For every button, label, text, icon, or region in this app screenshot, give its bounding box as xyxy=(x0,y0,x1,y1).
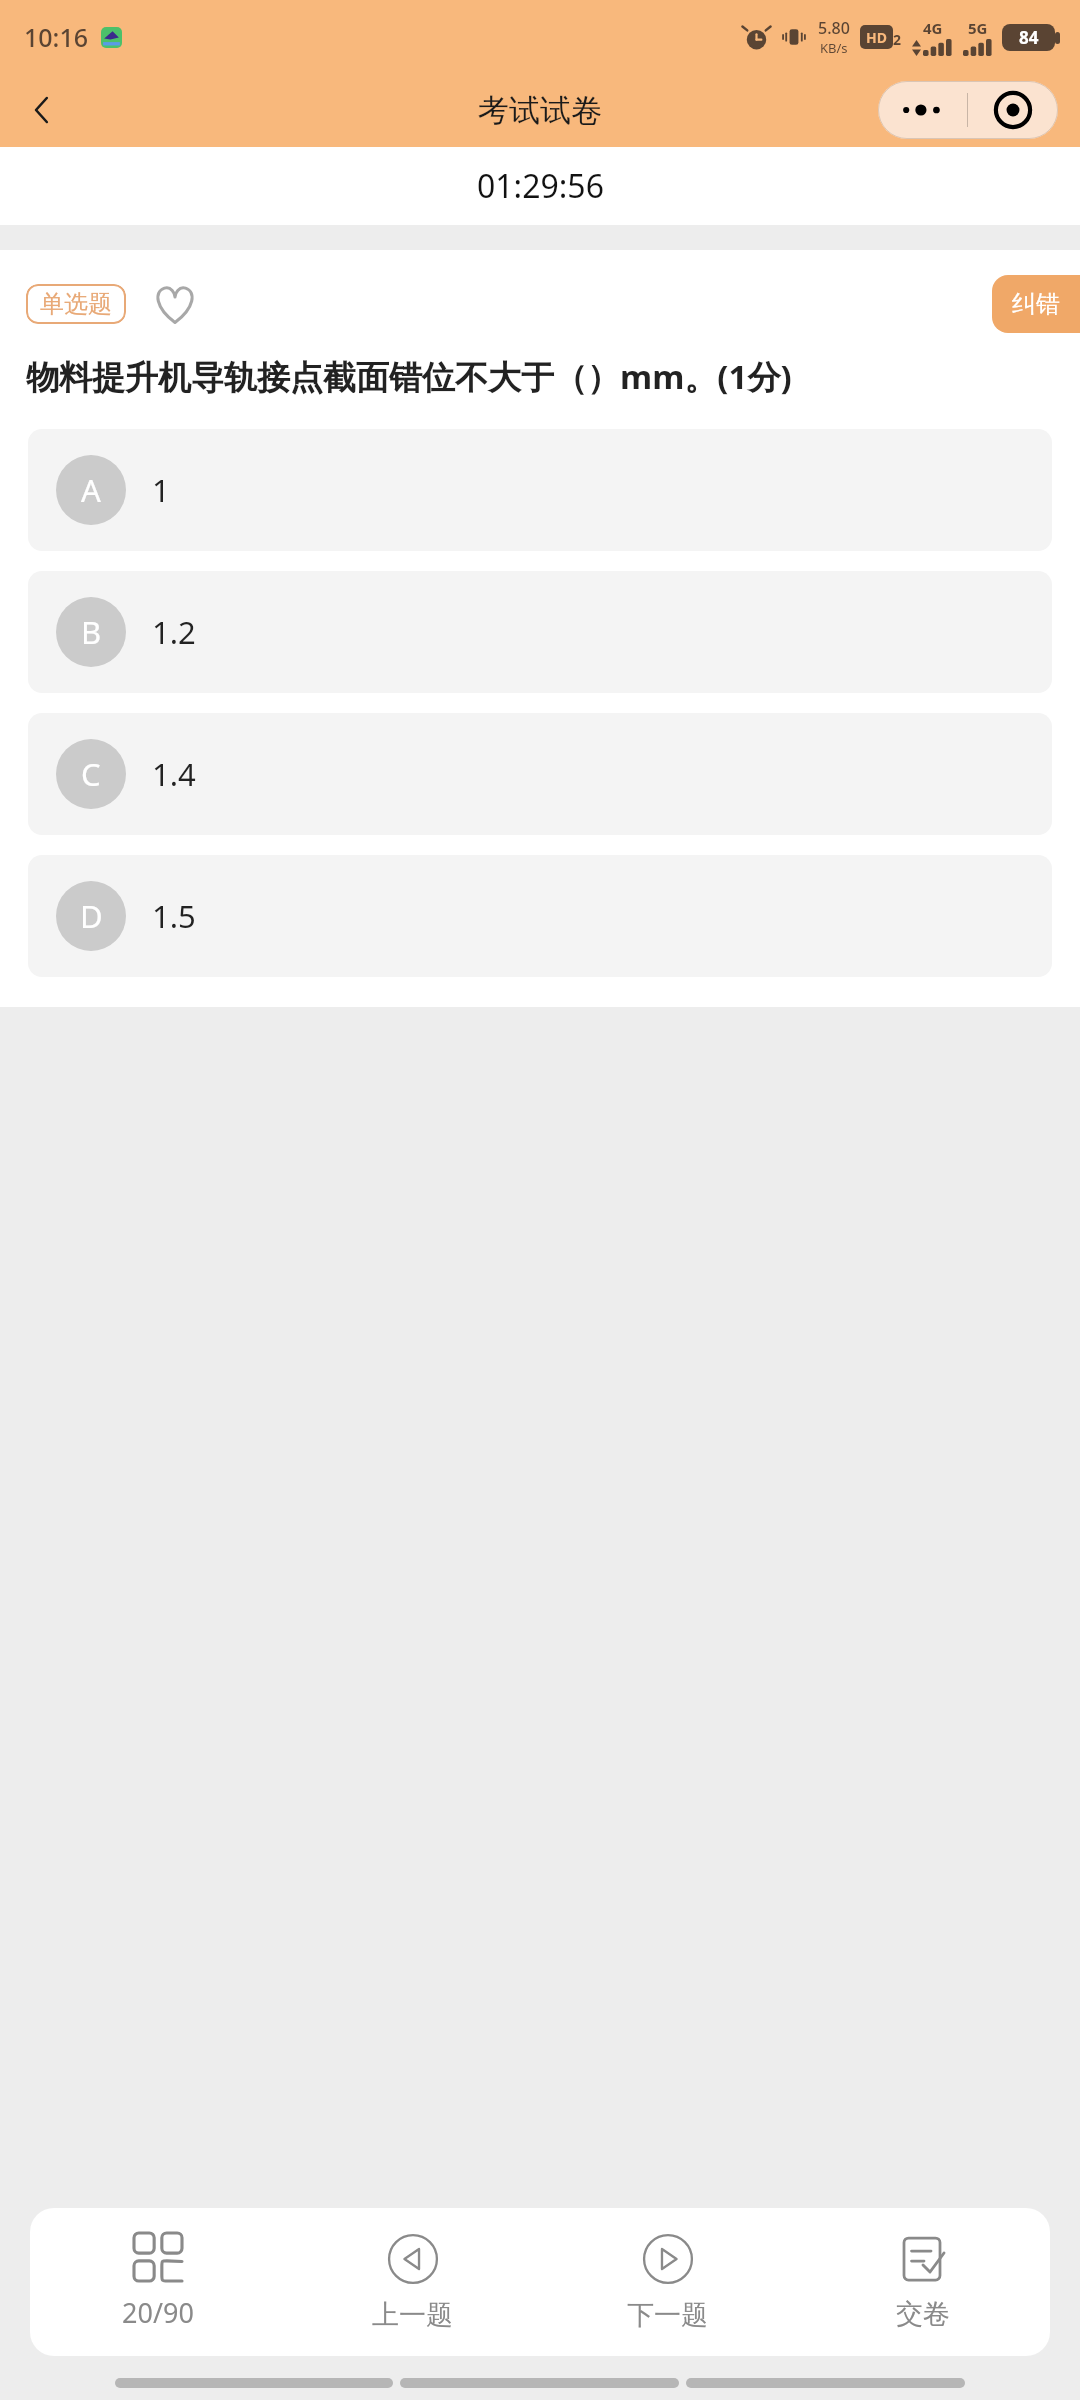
button[interactable]: Close xyxy=(968,81,1058,139)
staticText: 20/90 xyxy=(122,2294,194,2331)
staticText: 下一题 xyxy=(627,2298,708,2332)
button[interactable]: Back xyxy=(14,82,70,138)
staticText: 5.80 xyxy=(818,17,850,39)
staticText: 1 xyxy=(152,469,170,511)
staticText: 5G xyxy=(968,18,988,38)
staticText: 纠错 xyxy=(1012,289,1060,319)
staticText: KB/s xyxy=(820,39,848,57)
staticText: 1.4 xyxy=(152,753,196,795)
staticText: B xyxy=(81,611,102,653)
staticText: 考试试卷 xyxy=(478,91,602,130)
staticText: 1.5 xyxy=(152,895,196,937)
staticText: A xyxy=(81,469,101,511)
button[interactable]: D xyxy=(28,855,1052,977)
staticText: 84 xyxy=(1019,26,1039,49)
button[interactable]: 单选题 xyxy=(26,284,126,324)
button[interactable]: 纠错 xyxy=(992,275,1080,333)
button[interactable]: C xyxy=(28,713,1052,835)
button[interactable]: 20/90 xyxy=(30,2208,285,2356)
staticText: 1.2 xyxy=(152,611,196,653)
staticText: 物料提升机导轨接点截面错位不大于（）mm。(1分) xyxy=(26,354,792,399)
button[interactable]: B xyxy=(28,571,1052,693)
staticText: D xyxy=(80,895,103,937)
button[interactable]: 交卷 xyxy=(795,2208,1050,2356)
button[interactable]: A xyxy=(28,429,1052,551)
staticText: 10:16 xyxy=(24,20,89,54)
staticText: 单选题 xyxy=(40,289,112,319)
staticText: 上一题 xyxy=(372,2298,453,2332)
staticText: 交卷 xyxy=(896,2297,950,2331)
staticText: HD xyxy=(866,28,887,47)
button[interactable]: More xyxy=(878,81,967,139)
button[interactable]: 上一题 xyxy=(285,2208,540,2356)
button[interactable]: Favorite xyxy=(148,277,202,331)
staticText: 4G xyxy=(923,18,943,38)
staticText: 01:29:56 xyxy=(477,164,604,208)
button[interactable]: 下一题 xyxy=(540,2208,795,2356)
staticText: C xyxy=(81,753,101,795)
staticText: 2 xyxy=(893,30,902,49)
